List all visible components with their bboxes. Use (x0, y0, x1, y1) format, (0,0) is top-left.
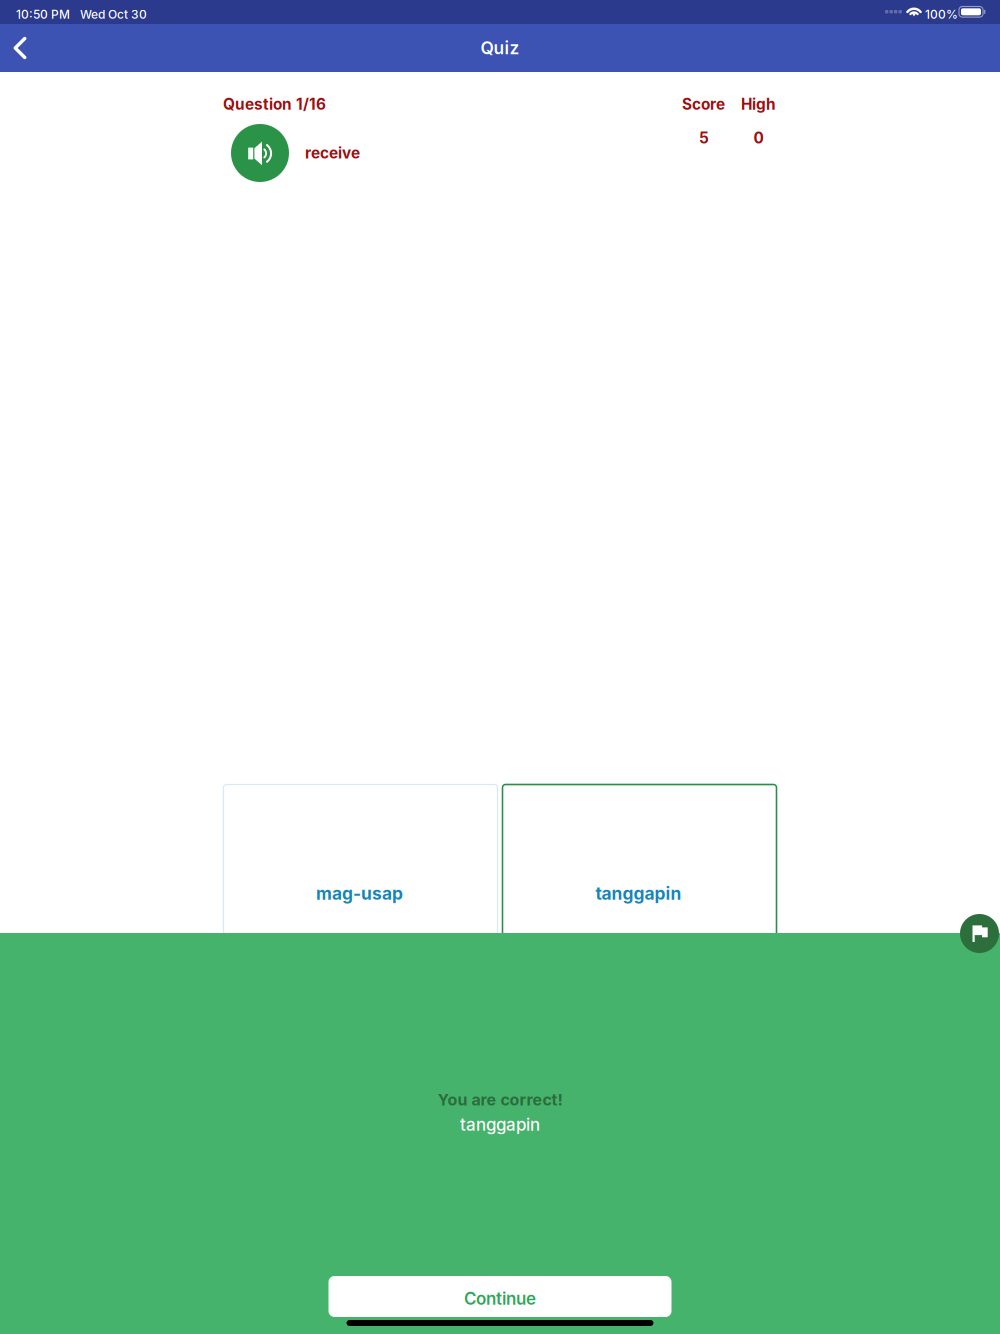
staticText: tanggapin (460, 1114, 540, 1135)
staticText: You are correct! (437, 1090, 562, 1109)
staticText: 100% (925, 7, 958, 21)
button[interactable]: Continue (328, 1276, 671, 1317)
button[interactable]: tanggapin (502, 784, 776, 1006)
staticText: tanggapin (595, 883, 681, 904)
staticText: 5 (699, 129, 709, 147)
button[interactable]: mag-usap (223, 784, 497, 1006)
staticText: Question 1/16 (223, 95, 326, 114)
staticText: mag-usap (316, 883, 403, 904)
staticText: Score (682, 95, 725, 114)
staticText: 10:50 PM (16, 7, 70, 21)
button[interactable]: Play pronunciation (231, 124, 289, 182)
staticText: Continue (464, 1288, 536, 1309)
button[interactable]: Back (0, 24, 40, 72)
staticText: High (741, 95, 776, 114)
staticText: Wed Oct 30 (80, 7, 147, 21)
staticText: 0 (753, 129, 763, 147)
staticText: Quiz (480, 37, 519, 58)
staticText: receive (305, 144, 360, 162)
button[interactable]: Report a problem (960, 914, 999, 953)
